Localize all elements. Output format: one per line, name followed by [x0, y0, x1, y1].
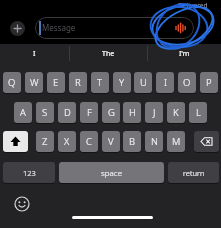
button[interactable]: Message [35, 17, 194, 39]
staticText: O [183, 76, 191, 89]
button[interactable]: space [59, 162, 164, 183]
button[interactable] [194, 131, 219, 152]
staticText: 123 [23, 168, 36, 178]
button[interactable] [14, 196, 30, 212]
staticText: I [164, 76, 167, 89]
button[interactable]: U [134, 72, 152, 93]
button[interactable]: X [58, 131, 76, 152]
button[interactable]: T [91, 72, 109, 93]
button[interactable]: V [102, 131, 120, 152]
button[interactable]: B [123, 131, 141, 152]
staticText: Y [119, 76, 125, 89]
button[interactable]: J [145, 102, 163, 123]
staticText: C [86, 135, 92, 148]
staticText: K [173, 106, 179, 119]
button[interactable]: Z [36, 131, 54, 152]
button[interactable]: E [47, 72, 65, 93]
staticText: Z [42, 135, 48, 148]
staticText: L [196, 106, 201, 119]
button[interactable]: N [145, 131, 163, 152]
button[interactable]: G [102, 102, 120, 123]
staticText: G [108, 106, 115, 119]
staticText: P [206, 76, 212, 89]
staticText: R [75, 76, 81, 89]
staticText: space [101, 167, 123, 178]
staticText: B [129, 135, 135, 148]
button[interactable]: R [69, 72, 87, 93]
staticText: I'm [179, 49, 190, 59]
staticText: N [151, 135, 158, 148]
button[interactable] [3, 131, 28, 152]
staticText: U [140, 76, 147, 89]
button[interactable]: S [36, 102, 54, 123]
button[interactable]: D [58, 102, 76, 123]
button[interactable]: I [156, 72, 174, 93]
button[interactable]: M [167, 131, 185, 152]
staticText: T [97, 76, 103, 89]
staticText: Delivered [178, 1, 208, 10]
staticText: X [64, 135, 70, 148]
button[interactable]: K [167, 102, 185, 123]
button[interactable]: L [189, 102, 207, 123]
staticText: S [42, 106, 48, 119]
button[interactable]: F [80, 102, 98, 123]
button[interactable]: C [80, 131, 98, 152]
button[interactable]: Q [3, 72, 21, 93]
staticText: W [30, 76, 39, 89]
button[interactable]: The [69, 44, 147, 63]
staticText: The [102, 49, 115, 59]
button[interactable]: O [178, 72, 196, 93]
button[interactable]: P [200, 72, 218, 93]
button[interactable]: I [0, 44, 69, 63]
button[interactable]: Y [113, 72, 131, 93]
button[interactable]: H [123, 102, 141, 123]
staticText: A [20, 106, 26, 119]
staticText: F [87, 106, 92, 119]
staticText: M [172, 135, 181, 148]
button[interactable]: A [14, 102, 32, 123]
staticText: J [153, 106, 156, 119]
button[interactable]: W [25, 72, 43, 93]
staticText: V [108, 135, 114, 148]
staticText: return [183, 168, 205, 178]
staticText: D [64, 106, 71, 119]
button[interactable]: 123 [3, 162, 55, 183]
staticText: E [53, 76, 59, 89]
staticText: I [33, 49, 36, 59]
staticText: Message [42, 22, 76, 33]
staticText: Q [8, 76, 16, 89]
button[interactable]: I'm [147, 44, 221, 63]
staticText: H [129, 106, 136, 119]
button[interactable] [10, 21, 25, 36]
button[interactable]: return [168, 162, 219, 183]
